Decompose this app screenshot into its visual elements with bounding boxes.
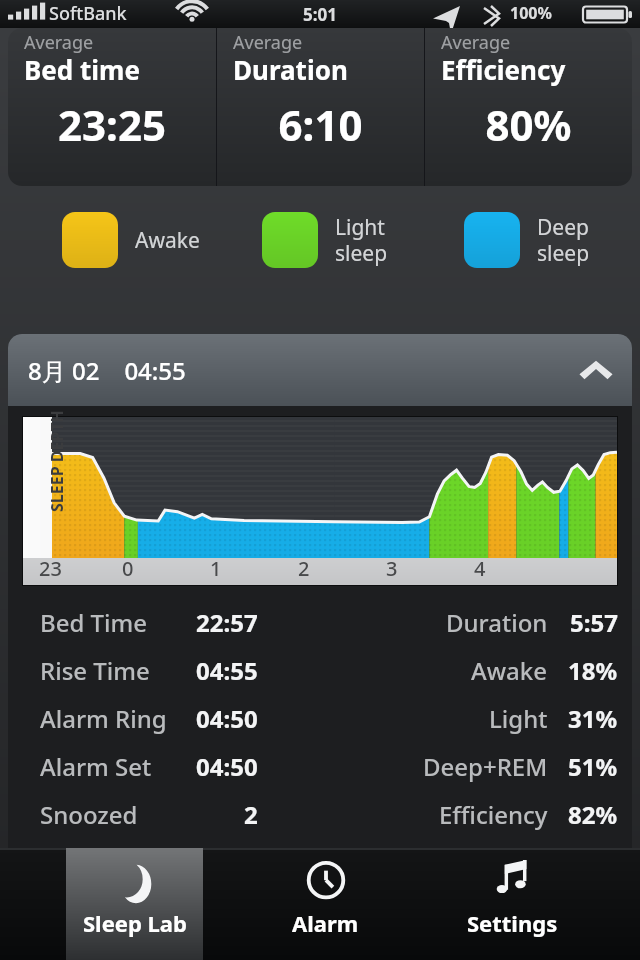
- staticText: 23:25: [8, 96, 216, 153]
- button[interactable]: Average: [8, 28, 216, 186]
- staticText: 4: [474, 555, 486, 582]
- staticText: 100%: [510, 2, 552, 24]
- staticText: Bed Time: [40, 606, 148, 639]
- button[interactable]: 8月 02 04:55: [8, 334, 632, 406]
- staticText: Bed time: [24, 52, 140, 87]
- button[interactable]: Bed Time: [8, 598, 632, 646]
- staticText: Alarm Ring: [40, 702, 167, 735]
- staticText: 5:57: [570, 606, 618, 639]
- staticText: Awake: [471, 654, 548, 687]
- button[interactable]: Average: [425, 28, 632, 186]
- staticText: Average: [441, 30, 511, 55]
- button[interactable]: Alarm Ring: [8, 694, 632, 742]
- staticText: Alarm Set: [40, 750, 152, 783]
- button[interactable]: Deep sleep: [464, 212, 590, 268]
- button[interactable]: Average: [217, 28, 424, 186]
- staticText: 0: [122, 555, 134, 582]
- staticText: 04:50: [196, 750, 258, 783]
- staticText: Duration: [446, 606, 548, 639]
- staticText: Average: [24, 30, 94, 55]
- staticText: 5:01: [303, 3, 337, 26]
- staticText: 23: [39, 555, 62, 582]
- staticText: 3: [386, 555, 398, 582]
- staticText: Deep+REM: [423, 750, 548, 783]
- staticText: Sleep Lab: [83, 908, 187, 938]
- staticText: 04:55: [196, 654, 258, 687]
- button[interactable]: Alarm: [257, 848, 394, 960]
- staticText: 2: [298, 555, 310, 582]
- staticText: SoftBank: [49, 1, 127, 26]
- staticText: 51%: [568, 750, 618, 783]
- staticText: Light sleep: [335, 213, 388, 267]
- staticText: 6:10: [217, 96, 424, 153]
- staticText: Snoozed: [40, 798, 138, 831]
- staticText: Efficiency: [441, 52, 566, 87]
- button[interactable]: Snoozed: [8, 790, 632, 838]
- staticText: 04:50: [196, 702, 258, 735]
- staticText: 22:57: [196, 606, 258, 639]
- staticText: 1: [210, 555, 222, 582]
- other: Collapse: [578, 352, 614, 388]
- staticText: 2: [244, 798, 258, 831]
- staticText: Average: [233, 30, 303, 55]
- staticText: Efficiency: [439, 798, 548, 831]
- button[interactable]: Awake: [62, 212, 200, 268]
- staticText: Alarm: [292, 908, 359, 938]
- staticText: Settings: [467, 908, 558, 938]
- button[interactable]: Sleep Lab: [66, 848, 203, 960]
- staticText: Duration: [233, 52, 348, 87]
- button[interactable]: Light sleep: [262, 212, 388, 268]
- button[interactable]: Settings: [444, 848, 581, 960]
- staticText: 8月 02 04:55: [28, 354, 186, 387]
- staticText: Light: [489, 702, 548, 735]
- staticText: 31%: [568, 702, 618, 735]
- staticText: Awake: [135, 226, 200, 255]
- button[interactable]: Alarm Set: [8, 742, 632, 790]
- staticText: SLEEP DEPTH: [46, 410, 68, 512]
- staticText: 80%: [425, 96, 632, 153]
- staticText: Deep sleep: [537, 213, 590, 267]
- staticText: Rise Time: [40, 654, 150, 687]
- staticText: 82%: [568, 798, 618, 831]
- staticText: 18%: [568, 654, 618, 687]
- button[interactable]: Rise Time: [8, 646, 632, 694]
